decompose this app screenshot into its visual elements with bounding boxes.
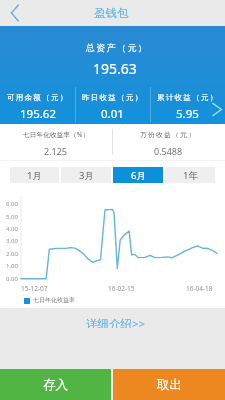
button[interactable]: Back xyxy=(0,0,30,26)
staticText: 总资产（元） xyxy=(86,42,149,53)
staticText: 16-04-18 xyxy=(186,284,213,293)
staticText: 七日年化收益率（%） xyxy=(23,130,90,139)
staticText: 存入 xyxy=(43,377,68,393)
staticText: 5.00 xyxy=(6,213,18,221)
staticText: 累计收益（元） xyxy=(157,93,219,102)
staticText: 可用余额（元） xyxy=(7,93,69,102)
staticText: 4.00 xyxy=(6,225,18,233)
staticText: 盈钱包 xyxy=(94,6,129,20)
staticText: 万份收益（元） xyxy=(140,130,197,139)
staticText: 1年 xyxy=(183,169,198,182)
staticText: 6.00 xyxy=(6,200,18,208)
button[interactable]: 1年 xyxy=(165,167,215,183)
staticText: 195.63 xyxy=(93,59,137,78)
staticText: 2.125 xyxy=(44,145,68,157)
staticText: 1.00 xyxy=(6,262,18,270)
staticText: 15-12-07 xyxy=(21,284,48,293)
button[interactable]: 详细介绍>> xyxy=(86,316,146,328)
staticText: 16-02-15 xyxy=(108,284,135,293)
staticText: 取出 xyxy=(157,377,182,393)
button[interactable]: 取出 xyxy=(113,369,225,400)
staticText: 七日年化收益率 xyxy=(33,296,75,304)
staticText: 2.00 xyxy=(6,250,18,258)
button[interactable]: 6月 xyxy=(113,167,163,183)
staticText: 6月 xyxy=(131,169,146,182)
staticText: 1月 xyxy=(27,169,42,182)
button[interactable]: 3月 xyxy=(61,167,111,183)
staticText: 3.00 xyxy=(6,237,18,245)
staticText: 0.01 xyxy=(101,106,124,122)
staticText: 昨日收益（元） xyxy=(82,93,144,102)
button[interactable]: 存入 xyxy=(0,369,111,400)
button[interactable]: 1月 xyxy=(10,167,59,183)
staticText: 5.95 xyxy=(176,106,199,122)
button[interactable]: 累计收益（元） xyxy=(150,91,225,125)
staticText: 0.00 xyxy=(6,275,18,283)
staticText: 0.5488 xyxy=(154,145,183,157)
staticText: 195.62 xyxy=(20,106,56,122)
staticText: 3月 xyxy=(79,169,94,182)
